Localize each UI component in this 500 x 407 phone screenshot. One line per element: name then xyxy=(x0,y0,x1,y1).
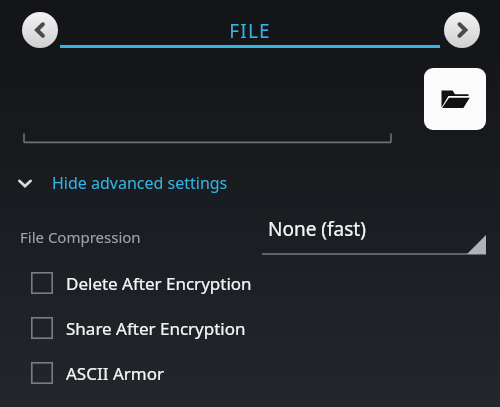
button[interactable]: Share After Encryption xyxy=(0,309,500,347)
staticText: FILE xyxy=(229,18,271,44)
staticText: ASCII Armor xyxy=(66,362,164,385)
button[interactable]: File path input xyxy=(20,128,395,148)
button[interactable]: Next xyxy=(444,12,480,48)
staticText: None (fast) xyxy=(268,216,366,242)
button[interactable]: Browse files xyxy=(424,68,486,130)
button[interactable]: None (fast) xyxy=(262,214,486,260)
staticText: Share After Encryption xyxy=(66,317,246,340)
button[interactable]: Previous xyxy=(22,12,58,48)
staticText: File Compression xyxy=(20,227,141,247)
staticText: Delete After Encryption xyxy=(66,272,252,295)
button[interactable]: Delete After Encryption xyxy=(0,264,500,302)
staticText: Hide advanced settings xyxy=(52,172,228,194)
button[interactable]: Hide advanced settings xyxy=(14,164,228,202)
button[interactable]: ASCII Armor xyxy=(0,354,500,392)
